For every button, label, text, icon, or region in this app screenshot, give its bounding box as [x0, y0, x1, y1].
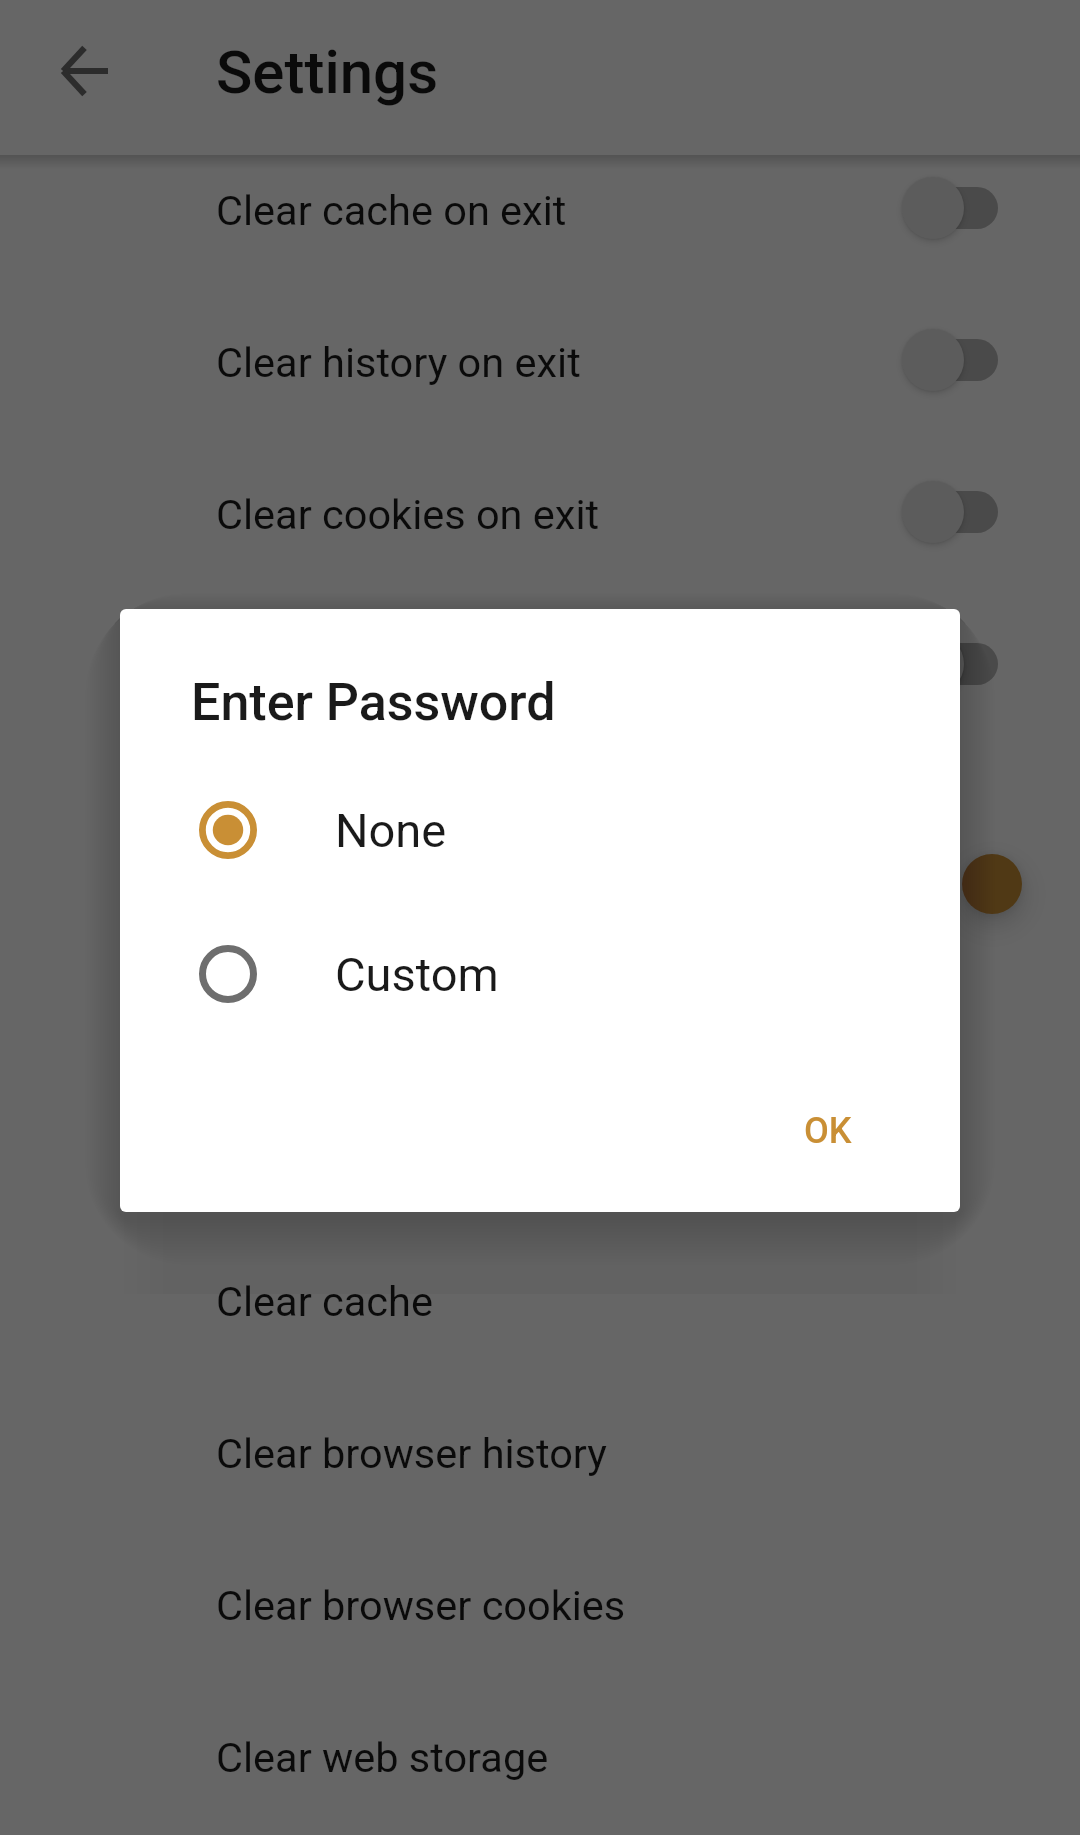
- button[interactable]: OK: [772, 1088, 884, 1174]
- button[interactable]: Clear cache on exit: [0, 134, 1080, 286]
- staticText: OK: [804, 1110, 852, 1152]
- button[interactable]: Custom: [120, 926, 960, 1022]
- staticText: Clear web storage: [216, 1733, 549, 1782]
- button[interactable]: Add: [962, 854, 1022, 914]
- staticText: Clear cache on exit: [216, 186, 567, 235]
- button[interactable]: Clear browser cookies: [0, 1529, 1080, 1681]
- staticText: Custom: [335, 947, 499, 1002]
- staticText: Settings: [216, 37, 439, 107]
- button[interactable]: Clear history on exit: [0, 286, 1080, 438]
- button[interactable]: Clear web storage: [0, 1681, 1080, 1833]
- button[interactable]: Clear cookies on exit: [0, 438, 1080, 590]
- staticText: Clear cache: [216, 1277, 433, 1326]
- staticText: Clear web storage on exit: [216, 642, 682, 691]
- button[interactable]: Back: [24, 18, 144, 138]
- staticText: None: [335, 803, 447, 858]
- staticText: Clear browser cookies: [216, 1581, 626, 1630]
- staticText: Enter Password: [191, 672, 556, 733]
- staticText: Clear browser history: [216, 1429, 607, 1478]
- staticText: Clear cookies on exit: [216, 490, 600, 539]
- button[interactable]: Clear web storage on exit: [0, 590, 1080, 742]
- button[interactable]: None: [120, 782, 960, 878]
- button[interactable]: Clear cache: [0, 1225, 1080, 1377]
- staticText: Clear history on exit: [216, 338, 581, 387]
- button[interactable]: Clear browser history: [0, 1377, 1080, 1529]
